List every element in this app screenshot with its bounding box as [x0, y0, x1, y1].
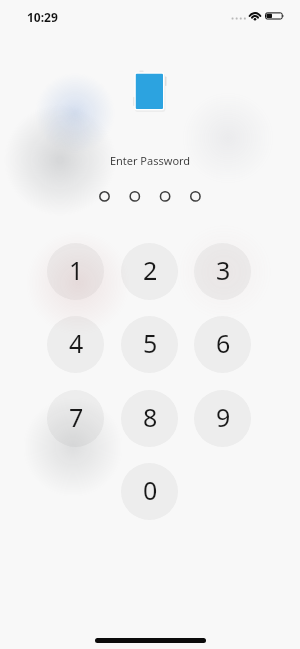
staticText: 1	[69, 253, 84, 287]
button[interactable]: 1	[47, 243, 104, 300]
staticText: 8	[143, 400, 158, 434]
other: App icon	[129, 67, 171, 115]
button[interactable]: 8	[121, 390, 178, 447]
button[interactable]: 9	[194, 390, 251, 447]
button[interactable]: 0	[121, 463, 178, 520]
staticText: 6	[216, 326, 231, 360]
button[interactable]: 6	[194, 316, 251, 373]
staticText: 3	[216, 253, 231, 287]
staticText: 7	[69, 400, 84, 434]
staticText: 4	[69, 326, 84, 360]
staticText: 10:29	[27, 9, 58, 25]
other: Status icons	[228, 6, 288, 22]
button[interactable]: 5	[121, 316, 178, 373]
button[interactable]: 4	[47, 316, 104, 373]
button[interactable]: 7	[47, 390, 104, 447]
button[interactable]: 2	[121, 243, 178, 300]
staticText: 0	[143, 473, 158, 507]
button[interactable]: 3	[194, 243, 251, 300]
staticText: 5	[143, 326, 158, 360]
staticText: Enter Password	[0, 153, 300, 168]
staticText: 9	[216, 400, 231, 434]
staticText: 2	[143, 253, 158, 287]
